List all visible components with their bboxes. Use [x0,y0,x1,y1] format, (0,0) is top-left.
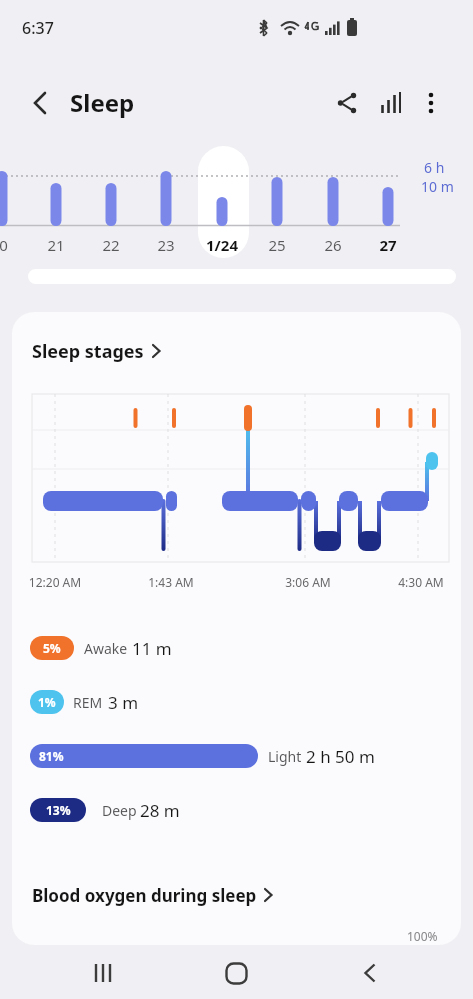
staticText: 1:43 AM [141,574,201,590]
button[interactable] [32,872,292,918]
button[interactable]: 25 [257,234,297,256]
staticText: REM [73,693,103,712]
button[interactable]: 22 [91,234,131,256]
staticText: 2 h 50 m [306,745,375,768]
staticText: 1/24 [206,235,238,255]
button[interactable]: 26 [313,234,353,256]
button[interactable]: 27 [368,234,408,256]
button[interactable] [414,84,448,122]
staticText: 6 h [424,158,445,177]
staticText: 12:20 AM [25,574,85,590]
staticText: 22 [102,235,120,255]
button[interactable]: 0 [0,234,23,256]
button[interactable]: 1/24 [202,234,242,256]
button[interactable]: 13% [30,798,86,822]
staticText: 1% [38,694,56,710]
staticText: Blood oxygen during sleep [32,884,257,907]
button[interactable] [372,84,410,122]
staticText: Sleep [70,86,135,119]
staticText: 26 [324,235,342,255]
button[interactable] [32,326,192,372]
staticText: 13% [46,802,71,818]
staticText: Deep [102,801,137,820]
staticText: 3:06 AM [278,574,338,590]
button[interactable] [20,82,62,124]
staticText: 25 [268,235,286,255]
staticText: 21 [47,235,65,255]
staticText: Awake [84,639,128,658]
staticText: 23 [157,235,175,255]
staticText: 0 [0,235,8,255]
staticText: 100% [407,928,438,944]
button[interactable]: 23 [146,234,186,256]
button[interactable] [328,84,366,122]
button[interactable] [80,953,126,993]
staticText: 27 [379,235,397,255]
staticText: Light [268,747,302,766]
button[interactable]: 1% [30,690,64,714]
staticText: 81% [39,748,64,764]
button[interactable] [213,953,259,993]
staticText: 28 m [140,799,180,822]
staticText: 5% [43,640,61,656]
button[interactable] [347,953,393,993]
staticText: 6:37 [22,17,54,39]
staticText: 10 m [421,177,454,196]
staticText: 4:30 AM [391,574,451,590]
staticText: 3 m [108,691,139,714]
button[interactable]: 81% [30,744,258,768]
button[interactable]: 21 [36,234,76,256]
button[interactable]: 5% [30,636,74,660]
staticText: Sleep stages [32,339,144,364]
staticText: 11 m [132,637,172,660]
